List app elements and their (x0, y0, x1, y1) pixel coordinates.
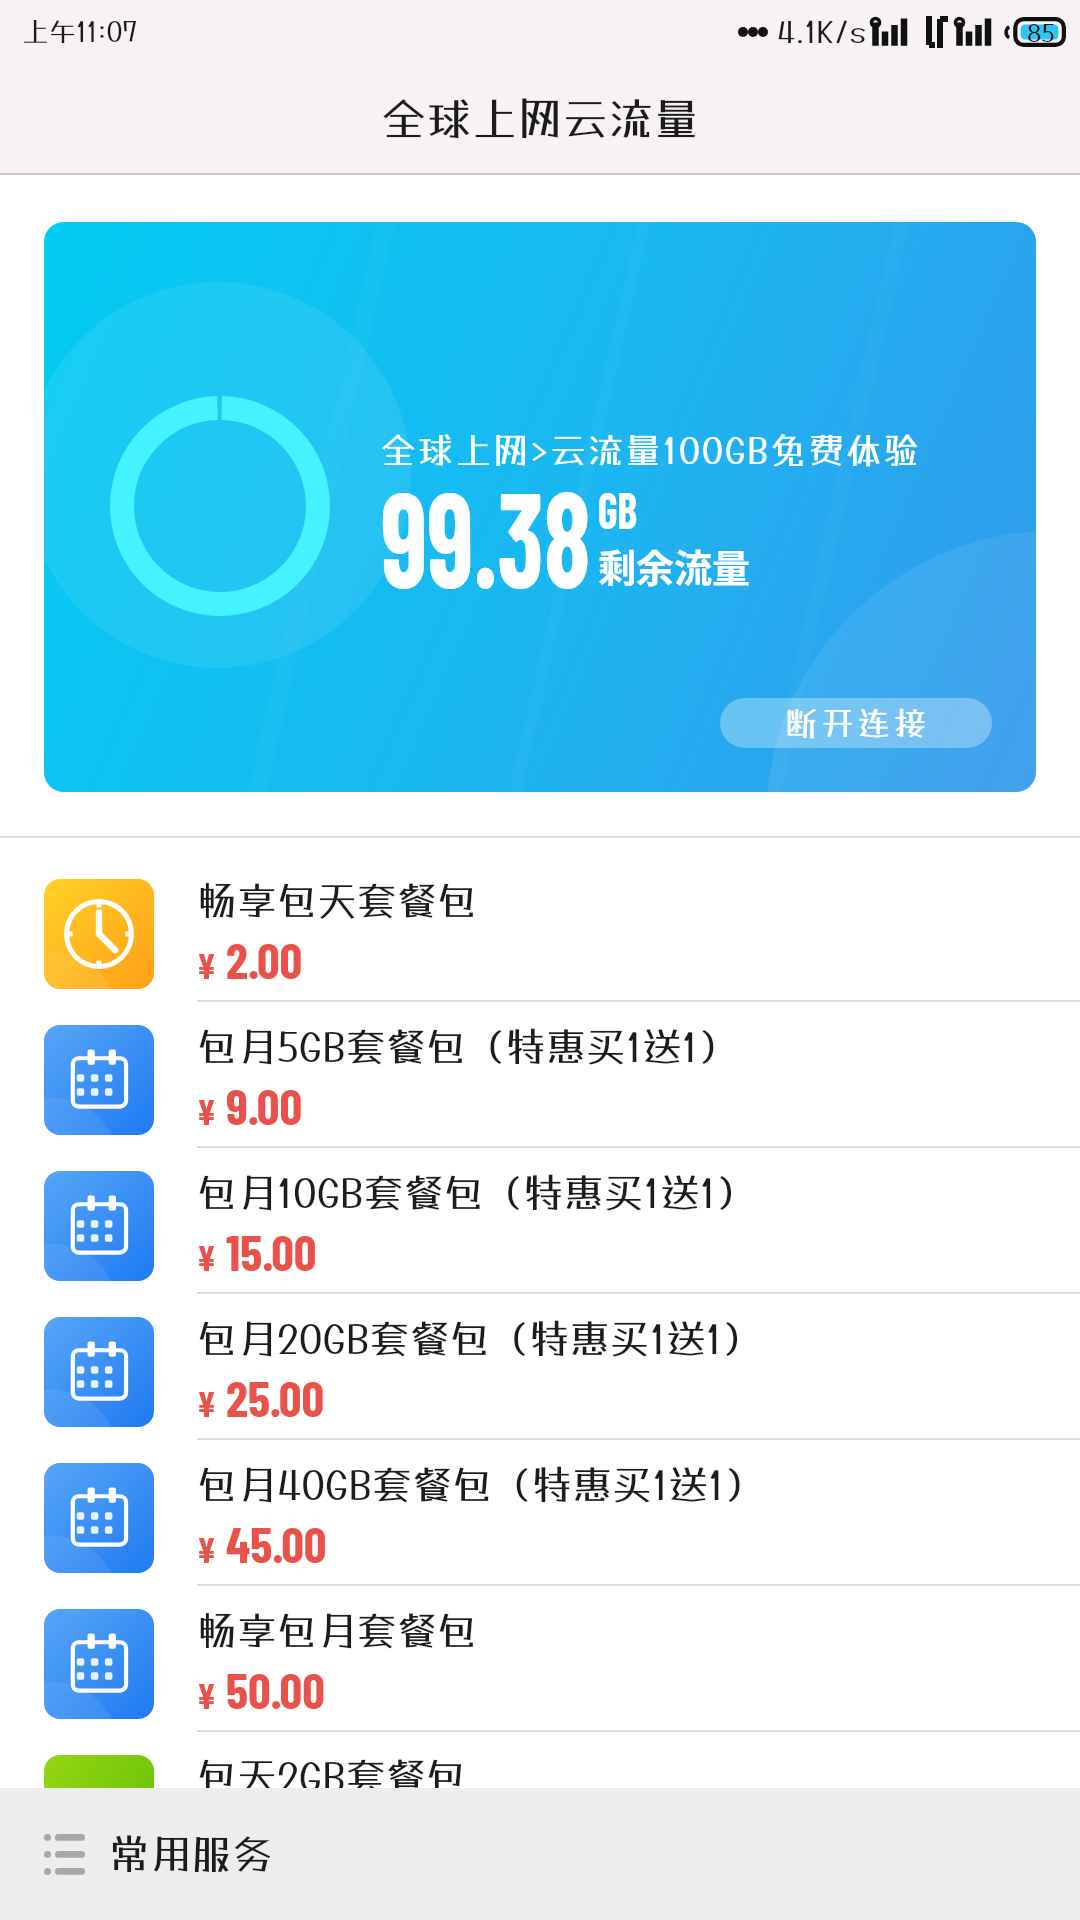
button[interactable]: 包天2GB套餐包 (0, 1732, 1080, 1788)
other: 常用服务列表 (44, 1832, 85, 1876)
staticText: 包月10GB套餐包（特惠买1送1） (197, 1169, 756, 1216)
staticText: 全球上网云流量 (381, 92, 700, 145)
button[interactable]: 包月5GB套餐包（特惠买1送1） (0, 1002, 1080, 1148)
staticText: 2.00 (226, 929, 303, 989)
staticText: ¥ (197, 943, 217, 986)
button[interactable]: 包月40GB套餐包（特惠买1送1） (0, 1440, 1080, 1586)
staticText: 上午11:07 (22, 15, 138, 47)
staticText: 9.00 (226, 1075, 303, 1135)
staticText: 85 (1027, 18, 1055, 46)
staticText: 畅享包天套餐包 (197, 877, 477, 924)
staticText: ¥ (197, 1527, 217, 1570)
button[interactable]: 全球上网>云流量100GB免费体验 (44, 222, 1036, 792)
staticText: 断开连接 (784, 704, 928, 743)
staticText: GB (598, 478, 637, 539)
staticText: 剩余流量 (598, 538, 751, 593)
button[interactable]: 畅享包天套餐包 (0, 838, 1080, 1002)
staticText: 4.1K/s (777, 14, 867, 49)
staticText: 包月20GB套餐包（特惠买1送1） (197, 1315, 762, 1362)
button[interactable]: 包月10GB套餐包（特惠买1送1） (0, 1148, 1080, 1294)
staticText: 包天2GB套餐包 (197, 1753, 466, 1788)
staticText: 全球上网>云流量100GB免费体验 (380, 429, 921, 471)
staticText: 45.00 (226, 1513, 327, 1573)
staticText: 常用服务 (109, 1830, 273, 1878)
staticText: ¥ (197, 1089, 217, 1132)
staticText: ¥ (197, 1673, 217, 1716)
staticText: ¥ (197, 1235, 217, 1278)
button[interactable]: 包月20GB套餐包（特惠买1送1） (0, 1294, 1080, 1440)
staticText: ¥ (197, 1381, 217, 1424)
staticText: 15.00 (226, 1221, 317, 1281)
button[interactable]: 畅享包月套餐包 (0, 1586, 1080, 1732)
staticText: 50.00 (226, 1659, 325, 1719)
button[interactable]: 断开连接 (720, 698, 992, 748)
staticText: 畅享包月套餐包 (197, 1607, 477, 1654)
staticText: 99.38 (381, 455, 591, 615)
staticText: 包月40GB套餐包（特惠买1送1） (197, 1461, 764, 1508)
staticText: 25.00 (226, 1367, 325, 1427)
staticText: 包月5GB套餐包（特惠买1送1） (197, 1023, 738, 1070)
button[interactable]: 常用服务列表 (0, 1788, 1080, 1920)
